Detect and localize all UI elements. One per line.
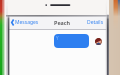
staticText: Peach xyxy=(54,19,71,26)
button[interactable]: Back to Messages xyxy=(8,19,41,26)
button[interactable]: Details xyxy=(85,19,107,26)
button[interactable]: Y xyxy=(54,34,89,48)
button[interactable]: Contact avatar xyxy=(95,38,102,45)
staticText: Messages xyxy=(15,19,39,26)
staticText: Y xyxy=(56,35,59,41)
